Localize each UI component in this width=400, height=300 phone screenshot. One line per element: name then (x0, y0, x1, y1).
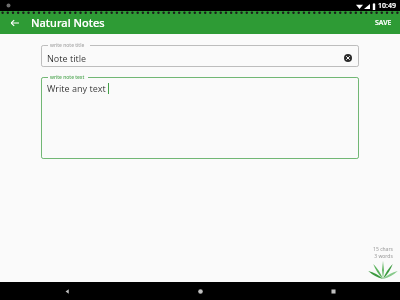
staticText: write note title (50, 42, 85, 49)
staticText: 3 words (374, 253, 393, 260)
button[interactable]: Back (7, 15, 23, 31)
button[interactable]: SAVE (369, 14, 398, 32)
button[interactable]: Home (134, 282, 267, 300)
staticText: 10:49 (378, 1, 396, 11)
staticText: write note text (50, 74, 85, 81)
button[interactable]: Clear title (341, 51, 355, 65)
staticText: Write any text (47, 82, 106, 94)
staticText: 15 chars (373, 246, 393, 253)
button[interactable]: Recent apps (267, 282, 400, 300)
button[interactable]: Back (0, 282, 134, 300)
button[interactable]: write note text (41, 77, 359, 159)
staticText: Note title (47, 52, 87, 64)
staticText: Natural Notes (31, 15, 105, 30)
staticText: SAVE (375, 18, 392, 28)
